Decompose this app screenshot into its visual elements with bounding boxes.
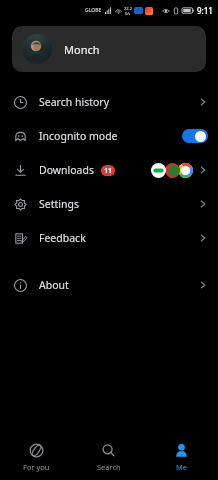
staticText: Search history [39, 95, 110, 109]
staticText: K/s [125, 11, 131, 16]
staticText: GLOBE [85, 7, 102, 14]
staticText: 9:11 [197, 5, 213, 16]
staticText: Incognito mode [39, 129, 118, 143]
staticText: 22.2 [124, 6, 132, 11]
staticText: Feedback [39, 231, 86, 245]
staticText: Monch [64, 42, 100, 57]
staticText: 11 [104, 166, 112, 175]
staticText: About [39, 278, 69, 292]
staticText: Me [176, 462, 188, 472]
staticText: Settings [39, 197, 79, 211]
button[interactable]: About [0, 268, 218, 302]
other: Search [101, 443, 116, 458]
button[interactable]: Feedback [0, 221, 218, 255]
staticText: For you [23, 462, 50, 472]
button[interactable]: Me [145, 435, 218, 480]
button[interactable]: Downloads [0, 153, 218, 187]
button[interactable]: Incognito mode [0, 119, 218, 153]
other: For you [29, 443, 44, 458]
button[interactable]: Search [72, 435, 145, 480]
staticText: Downloads [39, 163, 94, 177]
staticText: Search [97, 462, 121, 472]
button[interactable]: Incognito mode toggle [182, 129, 208, 143]
other: Me [174, 443, 189, 458]
button[interactable]: Settings [0, 187, 218, 221]
button[interactable]: Search history [0, 85, 218, 119]
button[interactable]: Monch [12, 26, 206, 72]
button[interactable]: For you [0, 435, 72, 480]
